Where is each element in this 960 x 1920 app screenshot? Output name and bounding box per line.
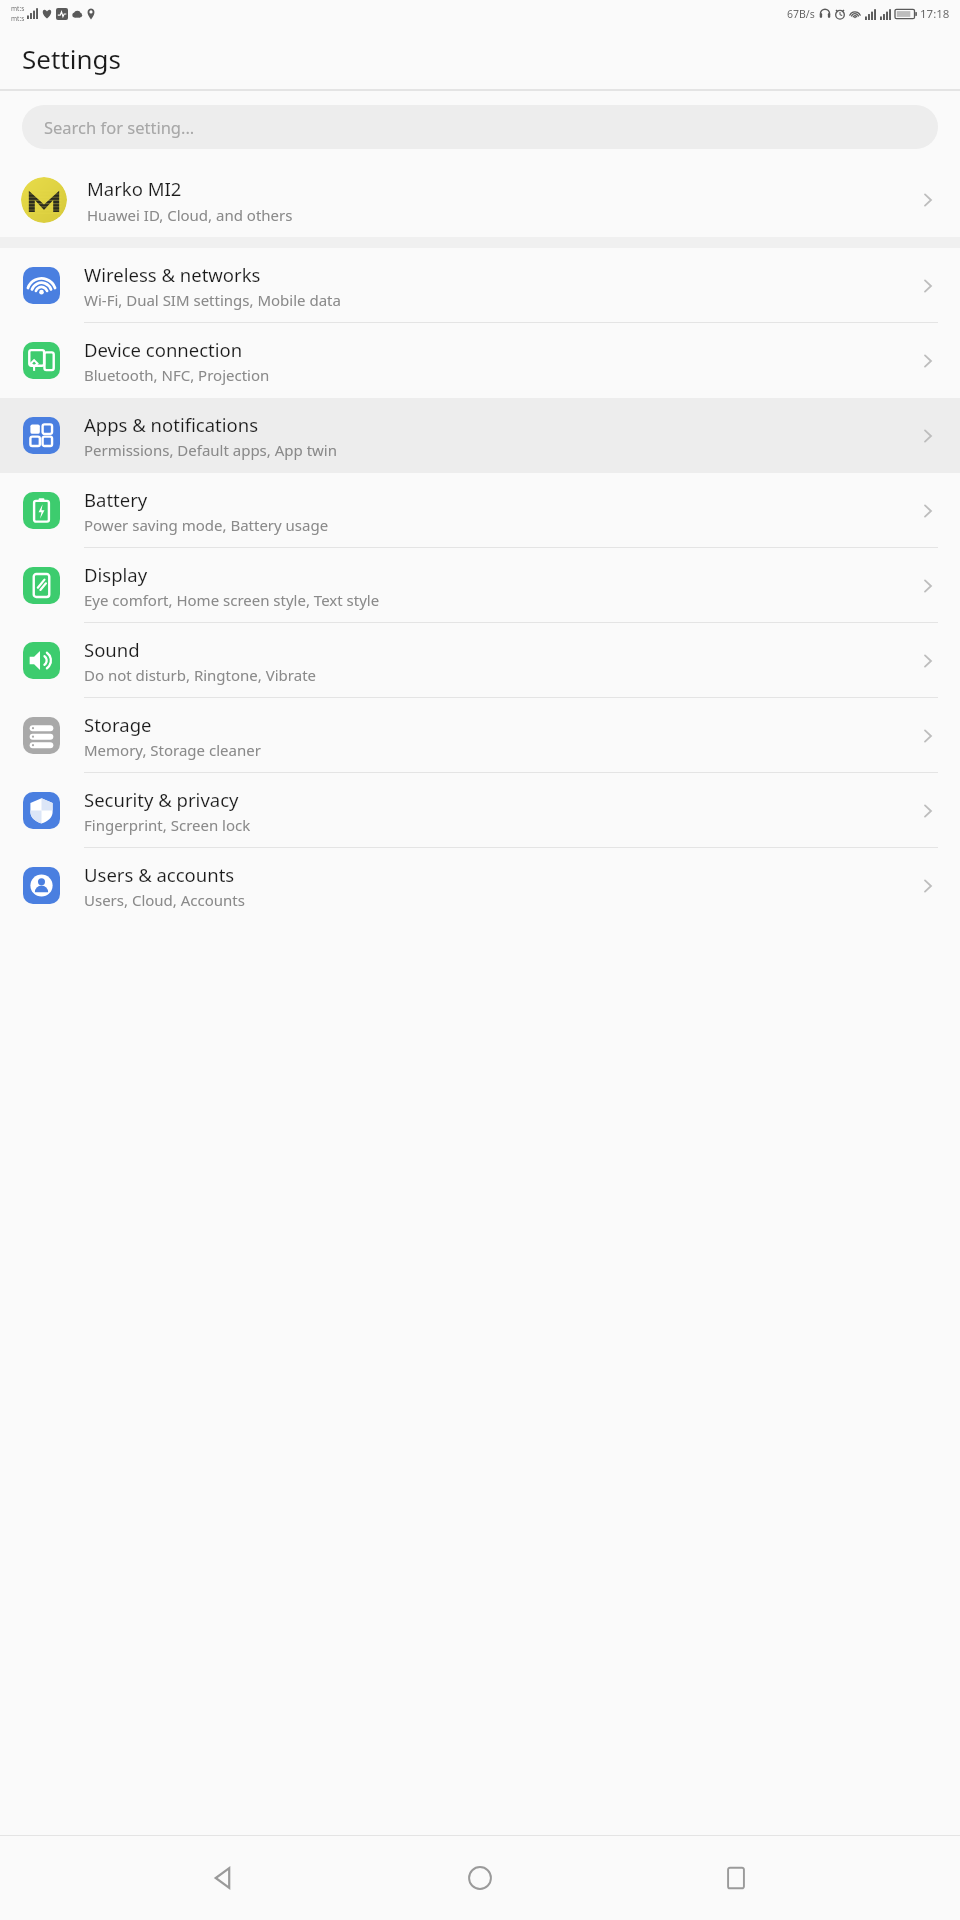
staticText: 17:18 — [920, 6, 950, 22]
staticText: Users & accounts — [84, 862, 235, 887]
staticText: Power saving mode, Battery usage — [84, 515, 329, 535]
button[interactable]: Apps & notifications — [0, 398, 960, 473]
staticText: Users, Cloud, Accounts — [84, 890, 245, 910]
staticText: Marko MI2 — [87, 176, 182, 201]
staticText: Bluetooth, NFC, Projection — [84, 365, 270, 385]
button[interactable]: Storage — [0, 698, 960, 773]
staticText: Display — [84, 562, 148, 587]
button[interactable]: Home — [448, 1846, 512, 1910]
staticText: 67B/s — [787, 7, 815, 21]
staticText: Storage — [84, 712, 152, 737]
staticText: Wireless & networks — [84, 262, 261, 287]
staticText: Memory, Storage cleaner — [84, 740, 261, 760]
button[interactable]: Security & privacy — [0, 773, 960, 848]
button[interactable]: Device connection — [0, 323, 960, 398]
staticText: Device connection — [84, 337, 243, 362]
button[interactable]: Recents — [704, 1846, 768, 1910]
staticText: mt:s — [11, 14, 25, 23]
staticText: Fingerprint, Screen lock — [84, 815, 251, 835]
staticText: Apps & notifications — [84, 412, 259, 437]
staticText: Sound — [84, 637, 140, 662]
button[interactable]: Display — [0, 548, 960, 623]
staticText: Eye comfort, Home screen style, Text sty… — [84, 590, 380, 610]
button[interactable]: Back — [192, 1846, 256, 1910]
button[interactable]: Sound — [0, 623, 960, 698]
button[interactable]: Wireless & networks — [0, 248, 960, 323]
button[interactable]: Battery — [0, 473, 960, 548]
button[interactable]: Users & accounts — [0, 848, 960, 923]
staticText: Huawei ID, Cloud, and others — [87, 205, 293, 225]
staticText: Do not disturb, Ringtone, Vibrate — [84, 665, 317, 685]
button[interactable]: Search for setting... — [22, 105, 938, 149]
button[interactable]: Marko MI2 — [0, 163, 960, 237]
staticText: mt:s — [11, 4, 25, 13]
staticText: Search for setting... — [44, 116, 195, 138]
staticText: Wi-Fi, Dual SIM settings, Mobile data — [84, 290, 341, 310]
staticText: Security & privacy — [84, 787, 239, 812]
staticText: Settings — [22, 41, 121, 76]
staticText: Permissions, Default apps, App twin — [84, 440, 338, 460]
staticText: Battery — [84, 487, 148, 512]
